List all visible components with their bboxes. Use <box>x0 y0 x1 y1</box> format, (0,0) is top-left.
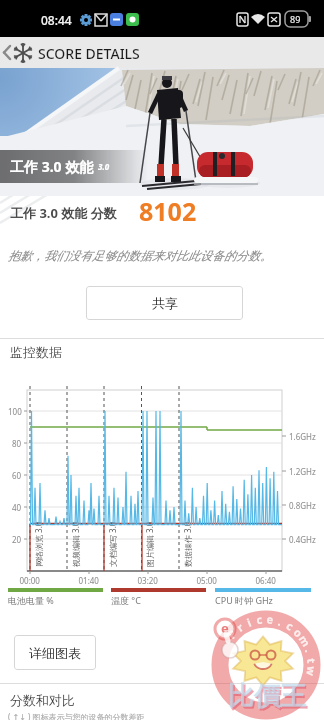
button[interactable] <box>0 37 36 68</box>
button[interactable]: 详细图表 <box>14 635 96 670</box>
staticText: 工作 3.0 效能 <box>10 157 94 176</box>
staticText: 共享 <box>152 295 178 311</box>
staticText: 抱歉，我们没有足够的数据来对比此设备的分数。 <box>8 248 272 263</box>
staticText: CPU 时钟 GHz <box>215 594 273 606</box>
staticText: 8102 <box>139 194 197 228</box>
staticText: 监控数据 <box>10 344 62 360</box>
staticText: ( ↑↓ ) 图标表示与您的设备的分数差距 <box>8 711 145 720</box>
staticText: 电池电量 % <box>8 594 54 606</box>
staticText: 3.0 <box>98 161 110 172</box>
staticText: 详细图表 <box>29 645 81 661</box>
staticText: SCORE DETAILS <box>38 44 140 63</box>
staticText: 89 <box>290 13 301 25</box>
staticText: 温度 °C <box>111 594 141 606</box>
staticText: 分数和对比 <box>10 692 75 708</box>
staticText: 工作 3.0 效能 分数 <box>10 204 117 222</box>
staticText: 08:44 <box>41 12 72 28</box>
button[interactable]: 共享 <box>86 286 243 320</box>
